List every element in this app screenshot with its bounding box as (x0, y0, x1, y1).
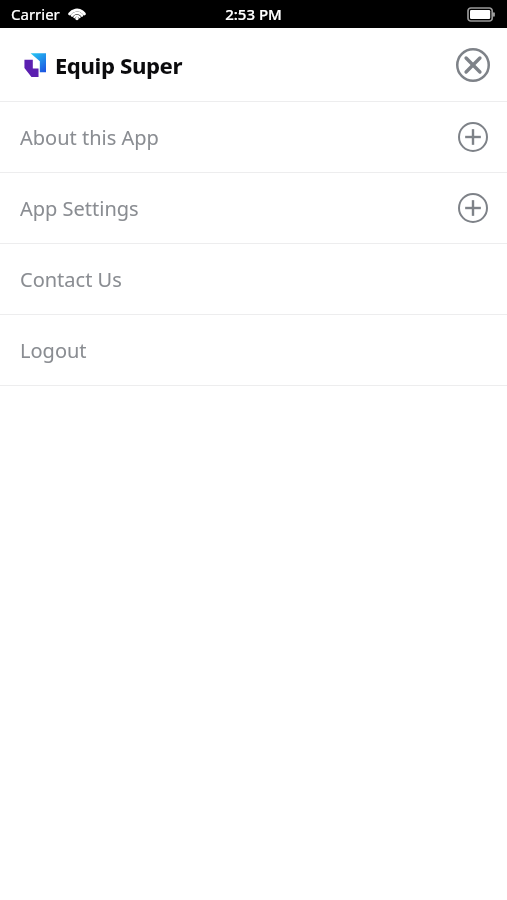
button[interactable]: Logout (0, 315, 507, 385)
button[interactable]: Close (450, 42, 496, 88)
staticText: Contact Us (20, 266, 122, 293)
staticText: Equip Super (55, 50, 183, 80)
staticText: 2:53 PM (225, 4, 282, 24)
staticText: App Settings (20, 195, 139, 222)
button[interactable]: About this App (0, 102, 507, 172)
button[interactable]: App Settings (0, 173, 507, 243)
staticText: Logout (20, 337, 87, 364)
staticText: About this App (20, 124, 159, 151)
staticText: Carrier (11, 4, 60, 24)
button[interactable]: Contact Us (0, 244, 507, 314)
